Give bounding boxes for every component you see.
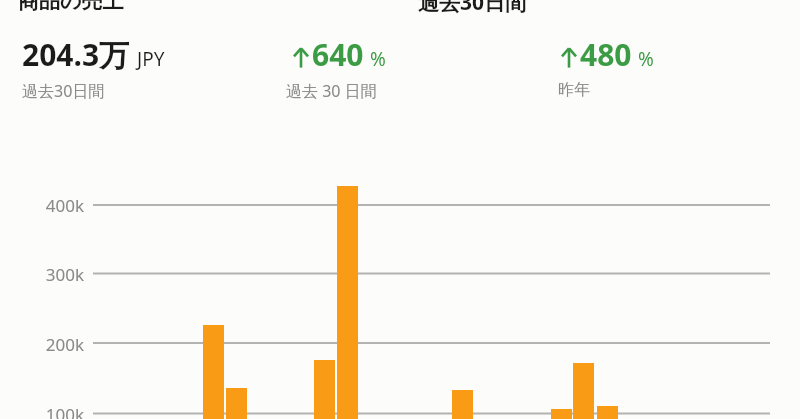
button[interactable]: 480 [558,34,654,75]
staticText: 640 [312,34,364,75]
staticText: 480 [580,34,632,75]
staticText: % [370,46,386,72]
staticText: 過去30日間 [22,80,105,102]
staticText: 昨年 [558,80,590,100]
button[interactable]: 204.3万 [22,34,165,75]
button[interactable]: 過去30日間 [418,0,527,17]
button[interactable]: 640 [290,34,386,75]
staticText: 100k [22,403,84,419]
button[interactable]: 商品の売上 [18,0,124,14]
staticText: 400k [22,194,84,217]
staticText: 300k [22,263,84,286]
staticText: 商品の売上 [18,0,124,14]
staticText: 過去30日間 [418,0,527,17]
staticText: JPY [137,46,165,72]
staticText: 204.3万 [22,34,130,75]
staticText: % [638,46,654,72]
staticText: 過去 30 日間 [286,80,377,102]
staticText: 200k [22,333,84,356]
button[interactable]: Sales bar chart [0,0,800,419]
